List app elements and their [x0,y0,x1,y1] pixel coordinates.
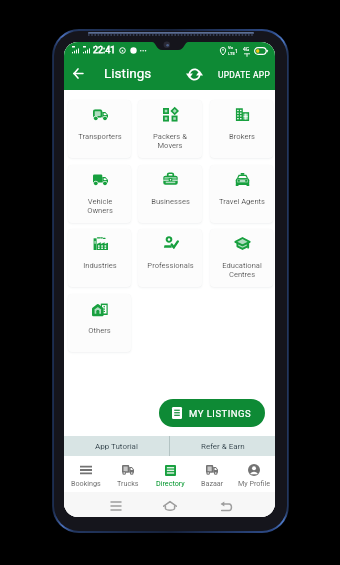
staticText: 1 [235,47,239,54]
button[interactable]: Brokers [210,100,273,158]
staticText: Packers & Movers [153,132,187,150]
button[interactable]: Refresh [183,64,205,84]
staticText: Industries [83,261,117,270]
staticText: App Tutorial [95,442,138,451]
staticText: 4G [243,46,250,53]
staticText: Bookings [71,479,101,487]
staticText: Travel Agents [219,197,265,206]
staticText: My Profile [238,479,270,487]
button[interactable]: Travel Agents [210,165,273,223]
button[interactable]: Back [215,495,237,517]
button[interactable]: App Tutorial [64,436,169,456]
staticText: Educational Centres [222,261,262,279]
button[interactable]: Professionals [138,229,202,287]
button[interactable]: Bookings [64,456,107,492]
staticText: Vehicle Owners [87,197,113,215]
staticText: Directory [156,479,185,487]
button[interactable]: Home [159,495,181,517]
staticText: Brokers [229,132,255,141]
staticText: 22:41 [93,45,116,56]
staticText: Businesses [151,197,190,206]
staticText: Listings [104,65,152,81]
staticText: MY LISTINGS [189,408,252,419]
staticText: Trucks [117,479,139,487]
staticText: Bazaar [201,479,224,487]
button[interactable]: Refer & Earn [170,436,275,456]
staticText: LTE [228,51,235,57]
button[interactable]: Recents [105,495,127,517]
staticText: Others [88,326,111,335]
staticText: Professionals [147,261,194,270]
button[interactable]: MY LISTINGS [159,399,265,427]
button[interactable]: My Profile [233,456,275,492]
staticText: Vo [228,45,233,51]
button[interactable]: Back [67,63,88,84]
button[interactable]: Trucks [107,456,149,492]
staticText: Refer & Earn [201,442,245,451]
button[interactable]: Businesses [138,165,202,223]
button[interactable]: Transporters [68,100,131,158]
staticText: UPDATE APP [218,70,271,80]
button[interactable]: Packers & Movers [138,100,202,158]
staticText: Transporters [78,132,122,141]
button[interactable]: Vehicle Owners [68,165,131,223]
button[interactable]: Educational Centres [210,229,273,287]
button[interactable]: Directory [149,456,191,492]
button[interactable]: Industries [68,229,131,287]
button[interactable]: Others [68,294,131,352]
button[interactable]: Bazaar [191,456,233,492]
button[interactable]: UPDATE APP [215,66,273,83]
